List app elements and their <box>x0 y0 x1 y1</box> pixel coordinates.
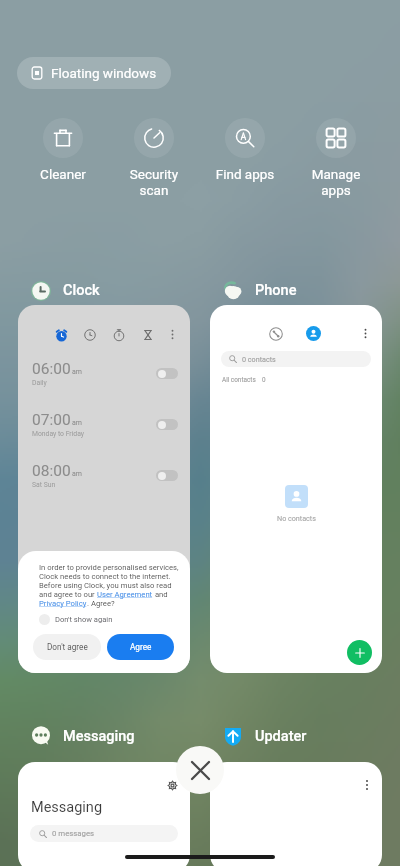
button[interactable]: Alarm toggle <box>156 470 178 481</box>
staticText: am <box>72 419 82 427</box>
staticText: and <box>153 590 168 599</box>
button[interactable]: Contacts <box>210 305 382 673</box>
staticText: Sat Sun <box>32 481 56 489</box>
staticText: Find apps <box>200 166 290 182</box>
staticText: 0 messages <box>52 829 95 838</box>
button[interactable]: Agree <box>107 634 174 660</box>
button[interactable]: 08:00 <box>32 462 178 489</box>
staticText: Cleaner <box>18 166 108 182</box>
staticText: Floating windows <box>51 65 157 81</box>
staticText: Phone <box>255 282 297 299</box>
button[interactable] <box>210 762 382 866</box>
staticText: Messaging <box>31 799 103 816</box>
staticText: 0 contacts <box>242 355 276 363</box>
staticText: Daily <box>32 379 47 387</box>
staticText: Monday to Friday <box>32 430 84 438</box>
staticText: Clock <box>63 282 100 299</box>
button[interactable]: Don't show again <box>39 614 113 625</box>
button[interactable]: Manage apps <box>291 118 381 198</box>
button[interactable]: Alarm toggle <box>156 419 178 430</box>
staticText: Messaging <box>63 728 135 745</box>
staticText: and agree to our <box>39 590 97 599</box>
button[interactable]: Don't agree <box>33 634 101 660</box>
button[interactable]: Updater <box>223 726 307 746</box>
button[interactable]: Floating windows <box>17 57 171 89</box>
staticText: . Agree? <box>87 599 115 608</box>
button[interactable]: Messaging <box>31 726 135 746</box>
staticText: Manage apps <box>291 166 381 198</box>
button[interactable]: 07:00 <box>32 411 178 438</box>
button[interactable]: Close all <box>176 746 224 794</box>
button[interactable]: Contacts <box>306 326 321 341</box>
staticText: Security scan <box>109 166 199 198</box>
staticText: Updater <box>255 728 307 745</box>
staticText: All contacts <box>222 376 256 384</box>
button[interactable]: 06:00 <box>18 305 190 673</box>
staticText: am <box>72 470 82 478</box>
staticText: 06:00 <box>32 360 71 378</box>
staticText: No contacts <box>277 514 316 522</box>
button[interactable]: 0 messages <box>30 825 178 842</box>
staticText: 08:00 <box>32 462 71 480</box>
button[interactable]: Clock <box>31 276 100 305</box>
staticText: User Agreement <box>97 590 153 599</box>
staticText: 07:00 <box>32 411 71 429</box>
button[interactable]: Find apps <box>200 118 290 182</box>
button[interactable]: Settings <box>168 781 177 790</box>
button[interactable]: Settings <box>18 762 190 866</box>
button[interactable]: 0 contacts <box>221 351 371 367</box>
button[interactable]: Alarm toggle <box>156 368 178 379</box>
button[interactable]: Security scan <box>109 118 199 198</box>
staticText: am <box>72 368 82 376</box>
staticText: Don't agree <box>47 642 88 652</box>
staticText: Privacy Policy <box>39 599 87 608</box>
staticText: Agree <box>130 642 152 652</box>
button[interactable]: 06:00 <box>32 360 178 387</box>
button[interactable]: Cleaner <box>18 118 108 182</box>
staticText: 0 <box>262 376 266 384</box>
staticText: Clock needs to connect to the internet. <box>39 572 171 581</box>
button[interactable]: Phone <box>223 276 297 305</box>
staticText: Before using Clock, you must also read <box>39 581 172 590</box>
staticText: Don't show again <box>55 615 113 624</box>
button[interactable]: Add contact <box>347 640 372 665</box>
staticText: In order to provide personalised service… <box>39 563 179 572</box>
